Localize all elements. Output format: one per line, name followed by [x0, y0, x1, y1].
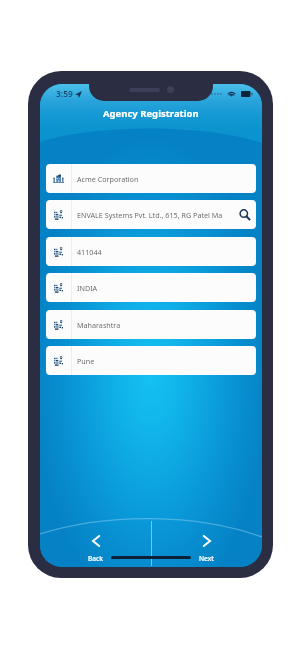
staticText: INDIA	[77, 283, 256, 293]
button[interactable]: INDIA	[46, 273, 256, 302]
staticText: Acme Corporation	[77, 174, 256, 184]
staticText: 3:59	[56, 88, 73, 100]
staticText: ENVALE Systems Pvt. Ltd., 615, RG Patel …	[77, 210, 234, 220]
button[interactable]: Acme Corporation	[46, 164, 256, 193]
staticText: Next	[199, 554, 214, 563]
button[interactable]: Search	[234, 200, 256, 229]
button[interactable]: Pune	[46, 346, 256, 375]
button[interactable]: Back	[40, 517, 151, 567]
button[interactable]: ENVALE Systems Pvt. Ltd., 615, RG Patel …	[46, 200, 256, 229]
button[interactable]: Next	[151, 517, 262, 567]
staticText: Pune	[77, 356, 256, 366]
staticText: Maharashtra	[77, 320, 256, 330]
staticText: Agency Registration	[103, 107, 199, 120]
staticText: Back	[88, 554, 104, 563]
button[interactable]: Maharashtra	[46, 310, 256, 339]
staticText: 411044	[77, 247, 256, 257]
button[interactable]: 411044	[46, 237, 256, 266]
